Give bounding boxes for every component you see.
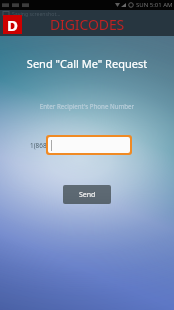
button[interactable]: Send bbox=[63, 185, 111, 204]
staticText: 1(868) bbox=[30, 141, 49, 150]
button[interactable]: Digicodes logo bbox=[3, 15, 22, 34]
staticText: DIGICODES bbox=[50, 15, 125, 34]
staticText: Send bbox=[79, 190, 96, 200]
staticText: Send "Call Me" Request bbox=[0, 56, 174, 71]
staticText: D bbox=[7, 15, 18, 34]
button[interactable] bbox=[48, 137, 130, 153]
staticText: SUN 5:01 AM bbox=[136, 1, 173, 9]
staticText: Saving screenshot... bbox=[12, 10, 61, 17]
staticText: Enter Recipient's Phone Number bbox=[0, 102, 174, 110]
